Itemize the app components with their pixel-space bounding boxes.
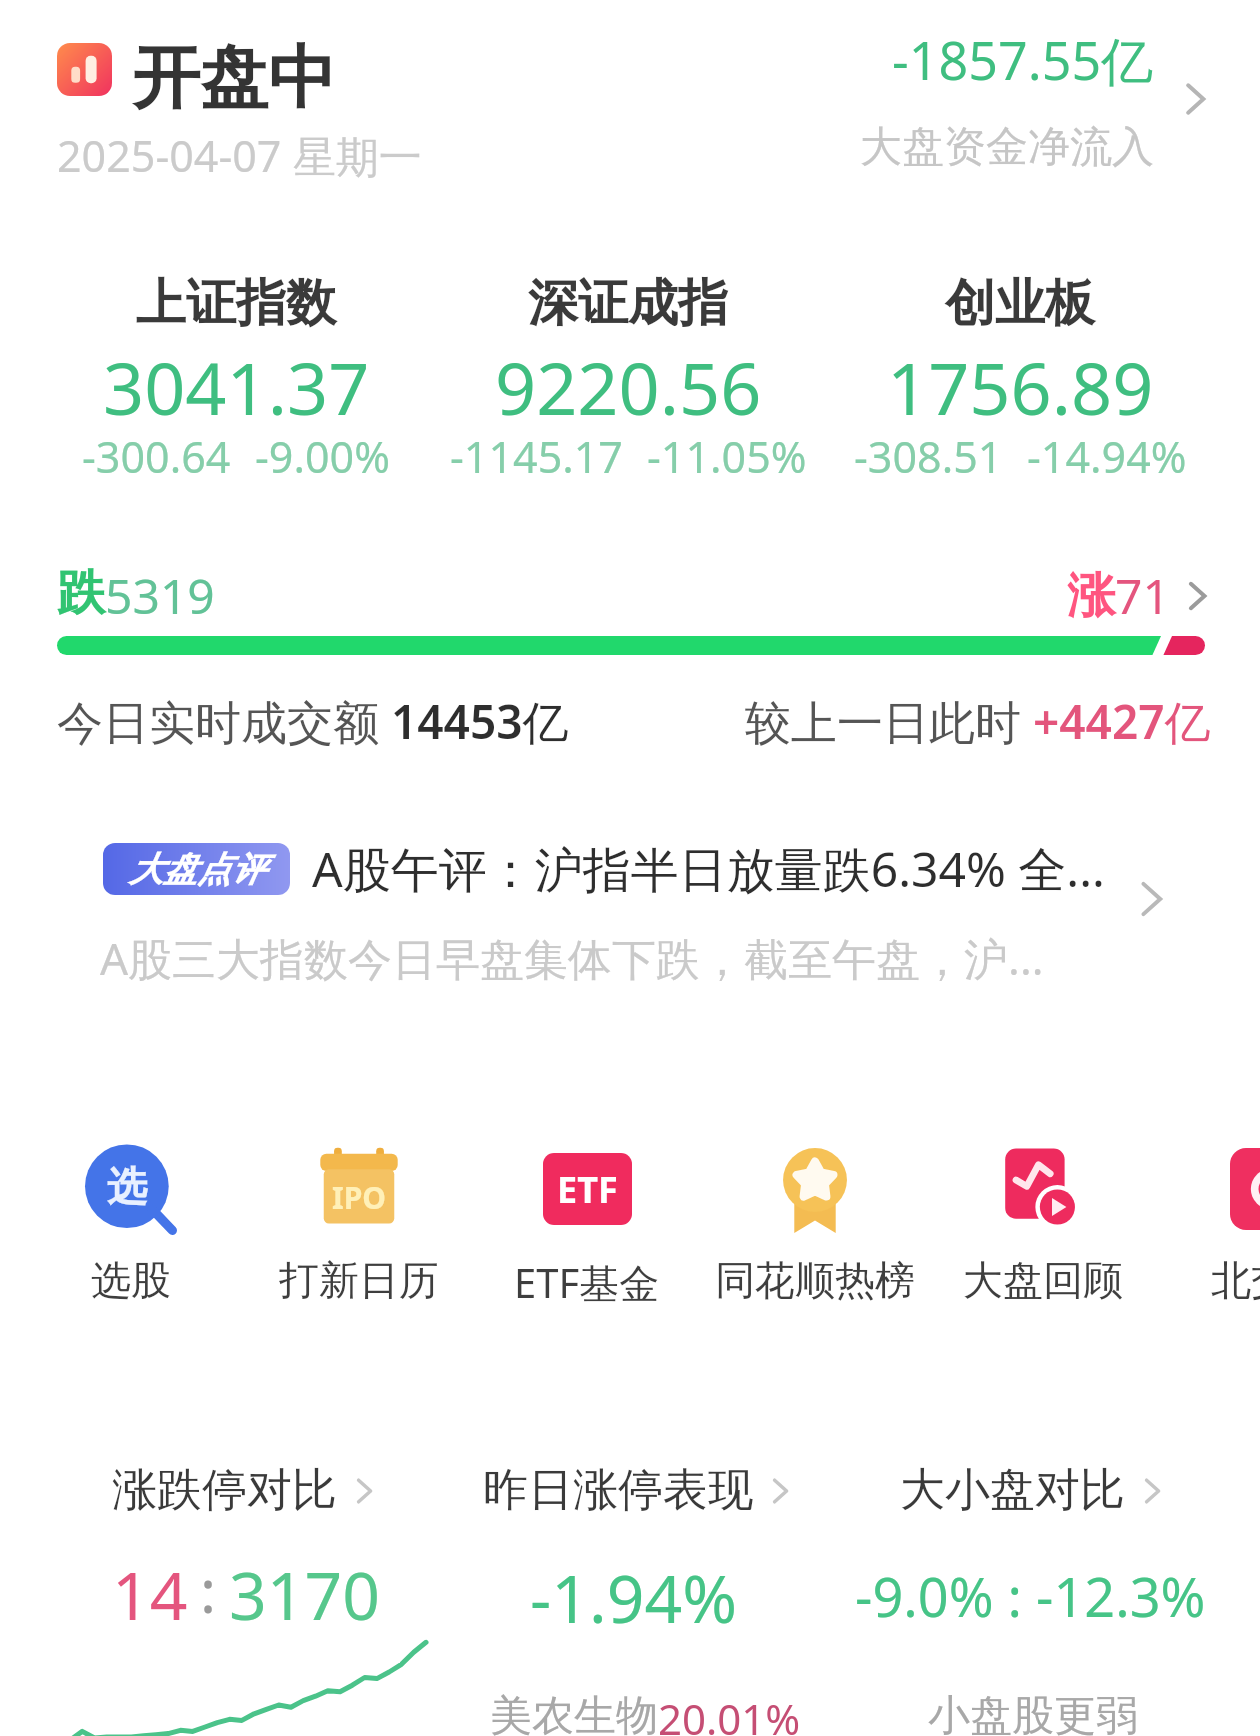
staticText: +4427亿 — [1033, 690, 1211, 750]
staticText: 2025-04-07 星期一 — [57, 126, 422, 185]
staticText: 71 — [1115, 563, 1170, 628]
staticText: 美农生物 — [490, 1690, 658, 1736]
staticText: 深证成指 — [528, 272, 728, 335]
staticText: -1145.17 — [450, 427, 623, 486]
staticText: 14 — [112, 1549, 188, 1639]
staticText: 1756.89 — [887, 338, 1154, 436]
staticText: 9220.56 — [495, 338, 762, 436]
other: ETF基金 — [543, 1153, 632, 1225]
staticText: 同花顺热榜 — [715, 1255, 915, 1305]
staticText: A股午评：沪指半日放量跌6.34% 全... — [312, 836, 1105, 902]
staticText: -11.05% — [647, 427, 807, 486]
staticText: -308.51 — [854, 427, 1003, 486]
staticText: -9.00% — [255, 427, 390, 486]
staticText: 较上一日此时 — [745, 690, 1033, 750]
staticText: 3170 — [229, 1549, 381, 1639]
staticText: 14453亿 — [391, 690, 569, 750]
button[interactable]: 大盘点评 — [0, 836, 1260, 996]
staticText: 3041.37 — [103, 338, 370, 436]
button[interactable]: 大小盘对比 — [900, 1462, 1167, 1519]
button[interactable]: ETF基金 — [473, 1143, 701, 1310]
staticText: 大盘资金净流入 — [860, 121, 1154, 174]
staticText: 今日实时成交额 — [57, 690, 391, 750]
staticText: 昨日涨停表现 — [483, 1462, 753, 1519]
staticText: 20.01% — [658, 1690, 801, 1736]
button[interactable]: 深证成指 — [432, 272, 824, 495]
staticText: 创业板 — [945, 272, 1095, 335]
button[interactable]: -1857.55亿 — [860, 24, 1220, 174]
button[interactable]: 创业板 — [824, 272, 1216, 495]
staticText: A股三大指数今日早盘集体下跌，截至午盘，沪... — [100, 928, 1044, 988]
other: 选股 — [85, 1143, 177, 1235]
staticText: 涨跌停对比 — [112, 1462, 337, 1519]
staticText: 大盘点评 — [129, 848, 265, 891]
staticText: 选股 — [91, 1255, 171, 1305]
staticText: ETF基金 — [514, 1255, 660, 1310]
button[interactable]: 昨日涨停表现 — [483, 1462, 795, 1519]
staticText: -14.94% — [1027, 427, 1187, 486]
button[interactable]: 涨跌停对比 — [112, 1462, 379, 1519]
button[interactable]: 涨 — [1067, 563, 1214, 628]
staticText: 大小盘对比 — [900, 1462, 1125, 1519]
staticText: 开盘中 — [132, 36, 336, 122]
other: 大盘回顾 — [998, 1144, 1088, 1234]
staticText: 涨 — [1067, 566, 1115, 626]
button[interactable]: 上证指数 — [40, 272, 432, 495]
staticText: 北交所 — [1211, 1255, 1260, 1305]
staticText: -300.64 — [82, 427, 231, 486]
button[interactable]: 北交所 — [1157, 1143, 1260, 1305]
staticText: 小盘股更弱 — [928, 1690, 1138, 1736]
staticText: -9.0% : -12.3% — [855, 1559, 1206, 1633]
other: 打新日历 — [316, 1146, 402, 1232]
other: 北交所 — [1230, 1148, 1260, 1230]
staticText: 大盘回顾 — [963, 1255, 1123, 1305]
button[interactable]: 选股 — [17, 1143, 245, 1305]
staticText: : — [200, 1549, 217, 1631]
button[interactable]: 打新日历 — [245, 1143, 473, 1305]
button[interactable]: 同花顺热榜 — [701, 1143, 929, 1305]
other: 同花顺热榜 — [770, 1144, 860, 1234]
staticText: -1857.55亿 — [892, 24, 1154, 95]
staticText: 5319 — [105, 563, 215, 628]
button[interactable]: 跌 — [57, 563, 215, 628]
staticText: IPO — [332, 1177, 387, 1218]
staticText: -1.94% — [530, 1552, 738, 1642]
staticText: ETF — [557, 1165, 618, 1214]
button[interactable]: 大盘回顾 — [929, 1143, 1157, 1305]
staticText: 打新日历 — [279, 1255, 439, 1305]
staticText: 上证指数 — [136, 272, 336, 335]
staticText: 跌 — [57, 563, 105, 623]
staticText: 选 — [107, 1161, 147, 1211]
